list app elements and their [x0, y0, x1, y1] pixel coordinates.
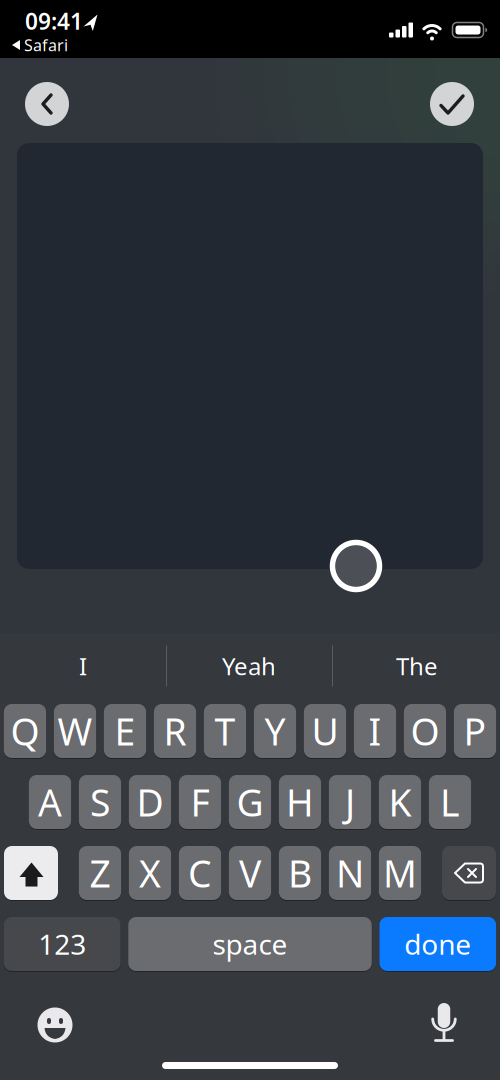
button[interactable]: E — [104, 704, 146, 758]
button[interactable]: V — [229, 846, 271, 900]
staticText: space — [212, 925, 287, 963]
button[interactable]: G — [229, 775, 271, 829]
staticText: E — [114, 706, 135, 756]
button[interactable]: M — [379, 846, 421, 900]
staticText: done — [404, 925, 471, 963]
button[interactable]: 123 — [4, 917, 121, 971]
staticText: I — [368, 706, 381, 756]
staticText: K — [388, 777, 411, 827]
button[interactable]: I — [354, 704, 396, 758]
staticText: J — [345, 777, 355, 827]
button[interactable]: The — [335, 633, 499, 699]
staticText: W — [57, 706, 92, 756]
button[interactable]: W — [54, 704, 96, 758]
button[interactable]: D — [129, 775, 171, 829]
staticText: 09:41 — [25, 6, 83, 36]
staticText: Q — [10, 706, 39, 756]
staticText: R — [163, 706, 186, 756]
staticText: The — [396, 650, 438, 682]
staticText: U — [311, 706, 338, 756]
staticText: M — [383, 848, 417, 898]
button[interactable]: Dictate — [425, 1003, 463, 1047]
staticText: C — [188, 848, 212, 898]
staticText: O — [410, 706, 439, 756]
staticText: T — [214, 706, 235, 756]
staticText: 123 — [38, 925, 86, 963]
button[interactable]: Y — [254, 704, 296, 758]
button[interactable]: Z — [79, 846, 121, 900]
staticText: Safari — [24, 34, 68, 56]
button[interactable]: N — [329, 846, 371, 900]
staticText: A — [38, 777, 62, 827]
button[interactable]: K — [379, 775, 421, 829]
button[interactable]: space — [128, 917, 372, 971]
button[interactable]: T — [204, 704, 246, 758]
button[interactable]: A — [29, 775, 71, 829]
button[interactable]: O — [404, 704, 446, 758]
button[interactable]: R — [154, 704, 196, 758]
staticText: N — [336, 848, 364, 898]
button[interactable]: Delete — [442, 846, 496, 900]
button[interactable]: Done — [430, 82, 474, 126]
button[interactable]: Yeah — [167, 633, 331, 699]
staticText: B — [288, 848, 312, 898]
button[interactable]: C — [179, 846, 221, 900]
staticText: P — [463, 706, 486, 756]
staticText: I — [79, 650, 87, 682]
staticText: D — [136, 777, 163, 827]
button[interactable]: H — [279, 775, 321, 829]
button[interactable]: U — [304, 704, 346, 758]
button[interactable]: done — [379, 917, 496, 971]
button[interactable]: Shift — [4, 846, 58, 900]
button[interactable]: Emoji — [37, 1007, 72, 1042]
button[interactable]: S — [79, 775, 121, 829]
staticText: S — [90, 777, 110, 827]
staticText: L — [440, 777, 460, 827]
staticText: Z — [89, 848, 110, 898]
button[interactable]: J — [329, 775, 371, 829]
staticText: X — [139, 848, 161, 898]
button[interactable]: I — [1, 633, 165, 699]
button[interactable]: B — [279, 846, 321, 900]
button[interactable]: P — [454, 704, 496, 758]
staticText: F — [190, 777, 209, 827]
button[interactable]: L — [429, 775, 471, 829]
button[interactable]: X — [129, 846, 171, 900]
staticText: G — [236, 777, 263, 827]
button[interactable]: Q — [4, 704, 46, 758]
staticText: Yeah — [222, 650, 276, 682]
staticText: V — [239, 848, 261, 898]
staticText: Y — [264, 706, 285, 756]
button[interactable]: F — [179, 775, 221, 829]
button[interactable]: Safari — [12, 34, 68, 56]
button[interactable]: Back — [25, 82, 69, 126]
staticText: H — [286, 777, 314, 827]
